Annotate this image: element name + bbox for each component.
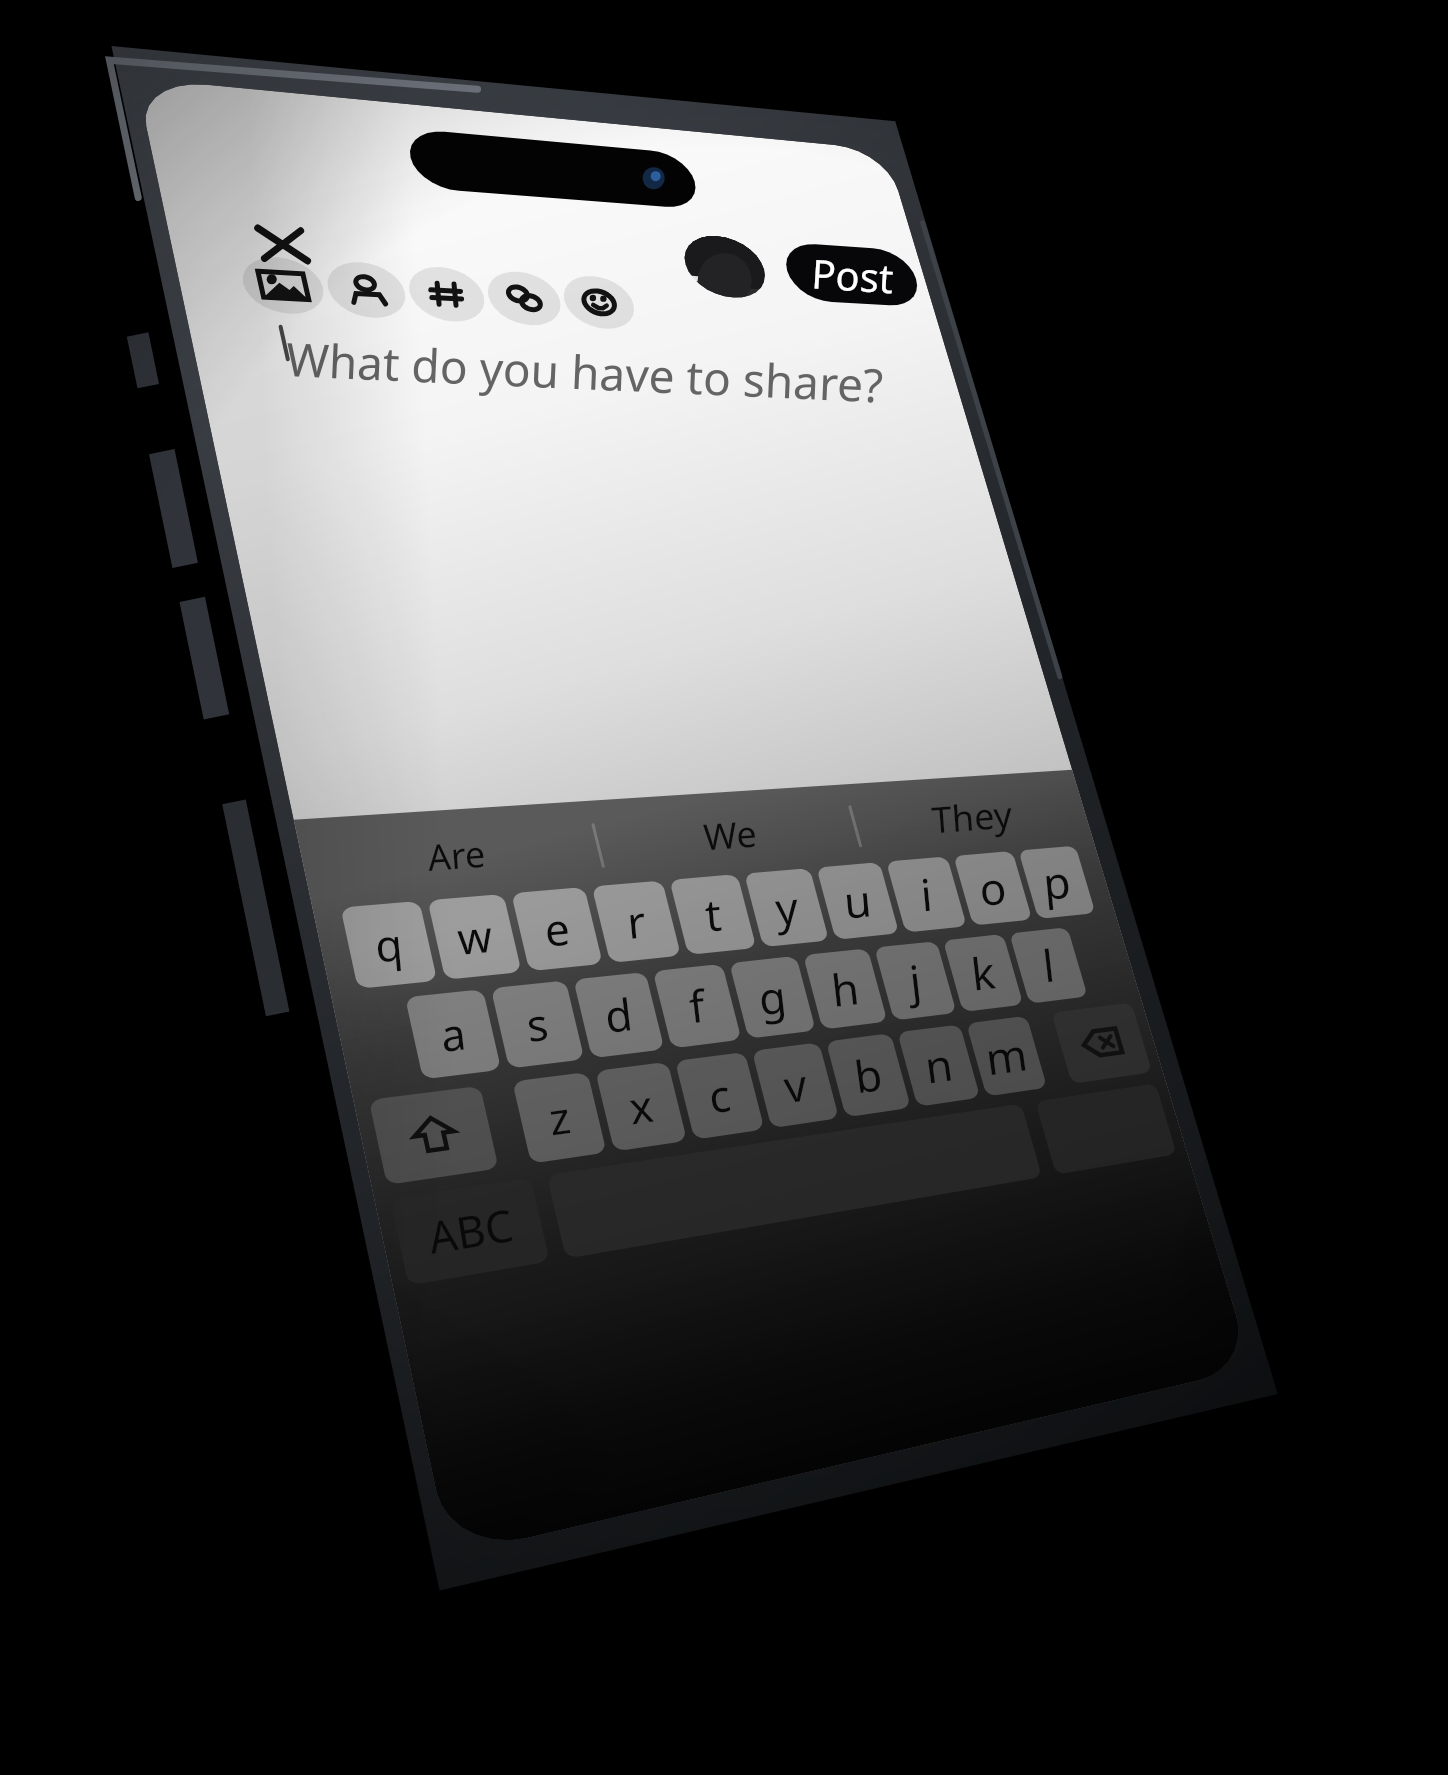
button[interactable]: Compose post bbox=[0, 0, 1448, 1775]
